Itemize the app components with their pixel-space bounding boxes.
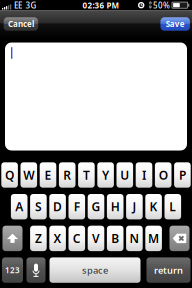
staticText: Z xyxy=(35,230,42,246)
button[interactable]: 123 xyxy=(2,257,23,283)
staticText: S xyxy=(35,199,42,215)
staticText: I xyxy=(142,167,146,183)
button[interactable]: E xyxy=(40,162,56,188)
staticText: X xyxy=(54,230,62,246)
button[interactable]: U xyxy=(116,162,133,188)
staticText: H xyxy=(111,199,120,215)
staticText: W xyxy=(23,167,34,183)
staticText: J xyxy=(132,199,136,215)
button[interactable]: Q xyxy=(1,162,18,188)
button[interactable]: R xyxy=(59,162,75,188)
staticText: V xyxy=(92,230,100,246)
button[interactable]: F xyxy=(68,194,85,219)
button[interactable]: P xyxy=(174,162,191,188)
button[interactable]: M xyxy=(145,226,162,251)
button[interactable]: Cancel xyxy=(4,17,38,31)
staticText: Cancel xyxy=(8,19,34,29)
staticText: Save xyxy=(166,19,185,29)
button[interactable]: return xyxy=(146,257,190,283)
button[interactable]: X xyxy=(49,226,66,251)
button[interactable]: H xyxy=(107,194,123,219)
button[interactable]: Shift xyxy=(2,226,22,251)
staticText: Q xyxy=(5,167,14,183)
staticText: G xyxy=(91,199,100,215)
staticText: Y xyxy=(102,167,109,183)
staticText: 02:36 PM xyxy=(82,0,119,11)
staticText: B xyxy=(111,230,119,246)
button[interactable]: N xyxy=(126,226,143,251)
staticText: K xyxy=(150,199,158,215)
staticText: return xyxy=(154,264,183,276)
staticText: E xyxy=(44,167,51,183)
button[interactable]: T xyxy=(78,162,95,188)
button[interactable]: Dictate xyxy=(26,257,45,283)
button[interactable]: Delete xyxy=(169,226,189,251)
staticText: space xyxy=(82,264,108,276)
staticText: F xyxy=(74,199,80,215)
staticText: O xyxy=(159,167,168,183)
staticText: R xyxy=(63,167,71,183)
staticText: 3G xyxy=(25,0,36,11)
button[interactable]: I xyxy=(136,162,152,188)
button[interactable]: C xyxy=(68,226,85,251)
staticText: C xyxy=(73,230,81,246)
button[interactable]: B xyxy=(107,226,123,251)
staticText: A xyxy=(15,199,23,215)
button[interactable]: D xyxy=(49,194,66,219)
button[interactable]: Z xyxy=(30,226,47,251)
staticText: EE xyxy=(14,0,22,11)
button[interactable]: O xyxy=(155,162,171,188)
staticText: 50% xyxy=(153,0,170,11)
button[interactable]: K xyxy=(145,194,162,219)
staticText: M xyxy=(148,230,159,246)
button[interactable]: V xyxy=(88,226,104,251)
staticText: L xyxy=(169,199,176,215)
staticText: D xyxy=(53,199,62,215)
button[interactable]: Y xyxy=(97,162,114,188)
button[interactable]: Save xyxy=(160,17,190,31)
staticText: T xyxy=(83,167,90,183)
staticText: N xyxy=(129,230,139,246)
button[interactable]: J xyxy=(126,194,143,219)
staticText: 123 xyxy=(5,265,20,275)
button[interactable]: L xyxy=(164,194,181,219)
button[interactable]: space xyxy=(49,257,140,283)
button[interactable]: G xyxy=(88,194,104,219)
staticText: P xyxy=(179,167,186,183)
staticText: U xyxy=(120,167,129,183)
button[interactable]: A xyxy=(11,194,27,219)
button[interactable]: S xyxy=(30,194,47,219)
button[interactable]: W xyxy=(20,162,37,188)
